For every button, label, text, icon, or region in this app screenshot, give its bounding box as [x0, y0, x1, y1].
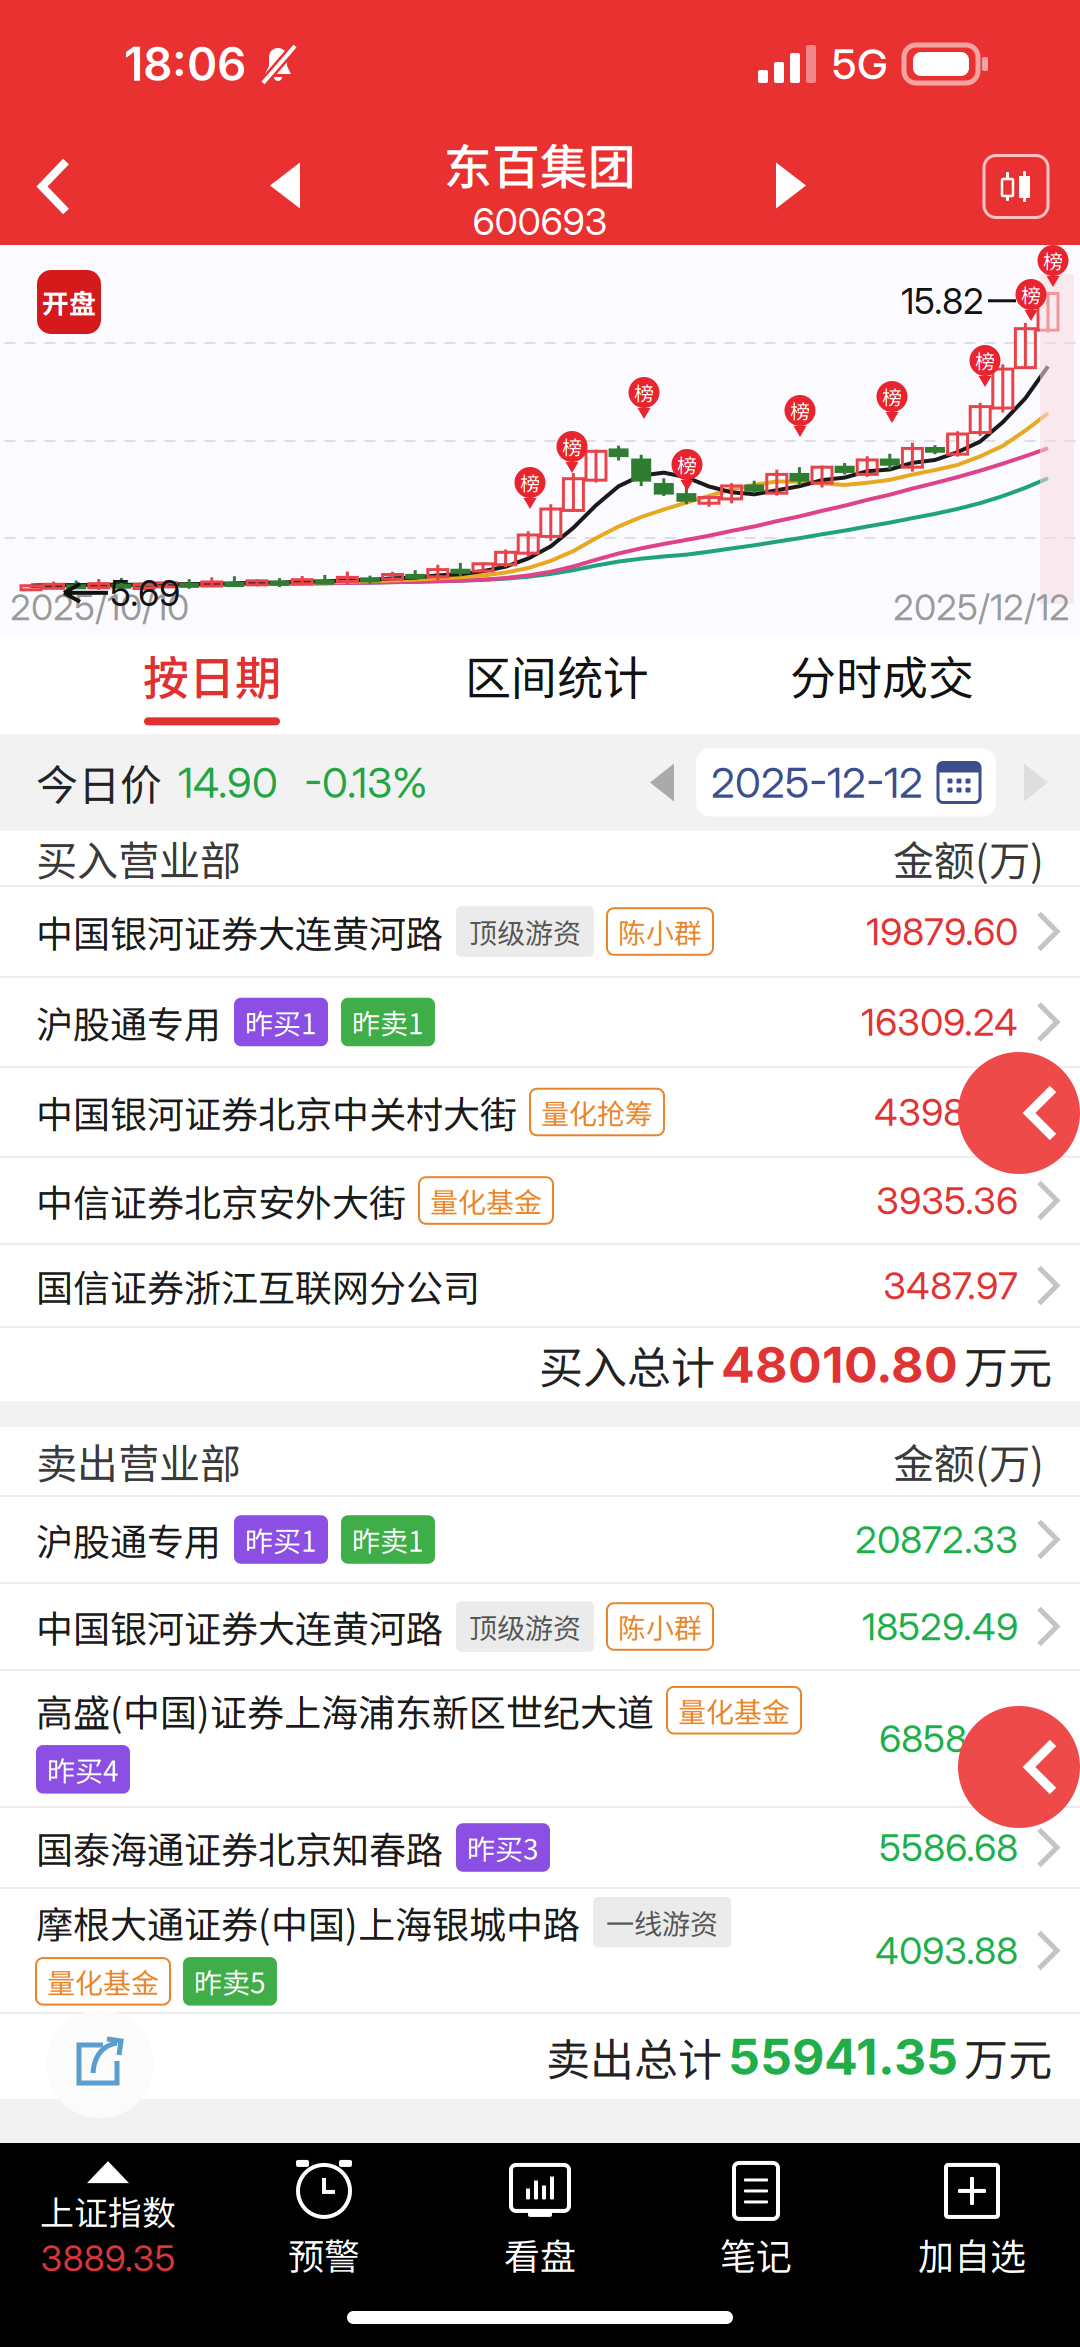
button[interactable]: Next stock: [748, 130, 872, 242]
staticText: 榜: [1043, 246, 1063, 275]
button[interactable]: 中国银河证券北京中关村大街: [0, 1068, 1080, 1158]
staticText: 万元: [964, 2025, 1052, 2088]
staticText: 万元: [964, 1333, 1052, 1396]
staticText: 4093.88: [875, 1927, 1018, 1973]
staticText: 榜: [562, 432, 582, 461]
button[interactable]: 国信证券浙江互联网分公司: [0, 1245, 1080, 1328]
staticText: 榜: [677, 450, 697, 479]
staticText: 加自选: [918, 2228, 1026, 2280]
staticText: 区间统计: [465, 642, 649, 708]
staticText: 顶级游资: [469, 911, 581, 952]
staticText: 榜: [520, 468, 540, 497]
staticText: 陈小群: [618, 911, 702, 952]
staticText: 6858.97: [879, 1715, 1018, 1761]
button[interactable]: 中信证券北京安外大街: [0, 1158, 1080, 1245]
staticText: 一线游资: [606, 1902, 718, 1942]
button[interactable]: 上证指数: [0, 2160, 216, 2280]
staticText: 18:06: [124, 36, 246, 92]
staticText: 20872.33: [855, 1516, 1018, 1562]
staticText: 中信证券北京安外大街: [36, 1174, 406, 1227]
staticText: 14.90: [178, 757, 278, 808]
staticText: 上证指数: [40, 2186, 176, 2235]
staticText: 中国银河证券大连黄河路: [36, 905, 443, 958]
button[interactable]: Back: [0, 130, 96, 242]
staticText: 19879.60: [866, 908, 1018, 954]
staticText: 卖出营业部: [36, 1431, 241, 1491]
button[interactable]: Previous day: [628, 761, 696, 803]
staticText: 3935.36: [876, 1177, 1018, 1223]
button[interactable]: 2025-12-12: [696, 748, 996, 816]
staticText: 预警: [288, 2228, 360, 2280]
button[interactable]: 按日期: [0, 633, 352, 734]
staticText: 5G: [832, 39, 888, 89]
staticText: 48010.80: [721, 1334, 958, 1395]
button[interactable]: 沪股通专用: [0, 978, 1080, 1068]
staticText: 量化基金: [430, 1180, 542, 1221]
staticText: 榜: [882, 382, 902, 411]
button[interactable]: 加自选: [864, 2160, 1080, 2280]
button[interactable]: Share: [46, 2010, 154, 2118]
button[interactable]: 预警: [216, 2160, 432, 2280]
staticText: 按日期: [143, 642, 281, 708]
staticText: 卖出总计: [546, 2025, 722, 2088]
staticText: 金额(万): [893, 1431, 1044, 1491]
staticText: 18529.49: [862, 1603, 1018, 1649]
staticText: 5586.68: [879, 1824, 1018, 1870]
staticText: 榜: [634, 378, 654, 407]
button[interactable]: 看盘: [432, 2160, 648, 2280]
staticText: 中国银河证券北京中关村大街: [36, 1085, 517, 1139]
staticText: 15.82: [901, 279, 984, 323]
staticText: 国信证券浙江互联网分公司: [36, 1259, 480, 1312]
staticText: 2025-12-12: [711, 757, 923, 808]
staticText: 2025/10/10: [10, 585, 189, 629]
staticText: 今日价: [36, 752, 162, 813]
staticText: 金额(万): [893, 828, 1044, 888]
staticText: 陈小群: [618, 1606, 702, 1647]
button[interactable]: Previous page: [1016, 1706, 1080, 1828]
staticText: 昨卖1: [352, 1002, 424, 1042]
button[interactable]: 分时成交: [762, 633, 1080, 734]
staticText: 中国银河证券大连黄河路: [36, 1600, 443, 1653]
staticText: 分时成交: [790, 642, 974, 708]
button[interactable]: 区间统计: [437, 633, 677, 734]
staticText: 昨买1: [245, 1002, 317, 1042]
staticText: 昨卖1: [352, 1519, 424, 1560]
staticText: 笔记: [720, 2228, 792, 2280]
staticText: 3487.97: [883, 1262, 1018, 1308]
staticText: 5.69: [110, 571, 180, 615]
button[interactable]: 高盛(中国)证券上海浦东新区世纪大道: [0, 1671, 1080, 1808]
button[interactable]: Next day: [996, 761, 1080, 803]
staticText: 3889.35: [40, 2236, 175, 2280]
staticText: 看盘: [504, 2228, 576, 2280]
staticText: 量化抢筹: [541, 1092, 653, 1132]
staticText: 4398.63: [874, 1089, 1018, 1135]
staticText: 2025/12/12: [893, 585, 1070, 629]
staticText: 摩根大通证券(中国)上海银城中路: [36, 1895, 580, 1949]
staticText: 沪股通专用: [36, 995, 221, 1049]
staticText: 昨买3: [467, 1827, 539, 1868]
staticText: 昨卖5: [194, 1961, 266, 2002]
staticText: 量化基金: [678, 1690, 790, 1730]
button[interactable]: K-line chart: [984, 155, 1080, 217]
staticText: 600693: [472, 198, 607, 244]
button[interactable]: Previous page: [1016, 1052, 1080, 1174]
staticText: -0.13%: [304, 757, 428, 808]
button[interactable]: 中国银河证券大连黄河路: [0, 887, 1080, 978]
staticText: 量化基金: [47, 1961, 159, 2002]
staticText: 昨买4: [47, 1749, 119, 1790]
staticText: 榜: [790, 396, 810, 425]
staticText: 昨买1: [245, 1519, 317, 1560]
staticText: 开盘: [42, 282, 96, 321]
staticText: 国泰海通证券北京知春路: [36, 1821, 443, 1874]
staticText: 沪股通专用: [36, 1513, 221, 1566]
staticText: 55941.35: [728, 2026, 958, 2087]
staticText: 榜: [975, 346, 995, 375]
staticText: 买入总计: [539, 1333, 715, 1396]
button[interactable]: 摩根大通证券(中国)上海银城中路: [0, 1889, 1080, 2014]
button[interactable]: 中国银河证券大连黄河路: [0, 1584, 1080, 1671]
staticText: 买入营业部: [36, 828, 241, 888]
button[interactable]: 国泰海通证券北京知春路: [0, 1808, 1080, 1889]
button[interactable]: Previous stock: [208, 130, 332, 242]
button[interactable]: 沪股通专用: [0, 1497, 1080, 1584]
button[interactable]: 笔记: [648, 2160, 864, 2280]
